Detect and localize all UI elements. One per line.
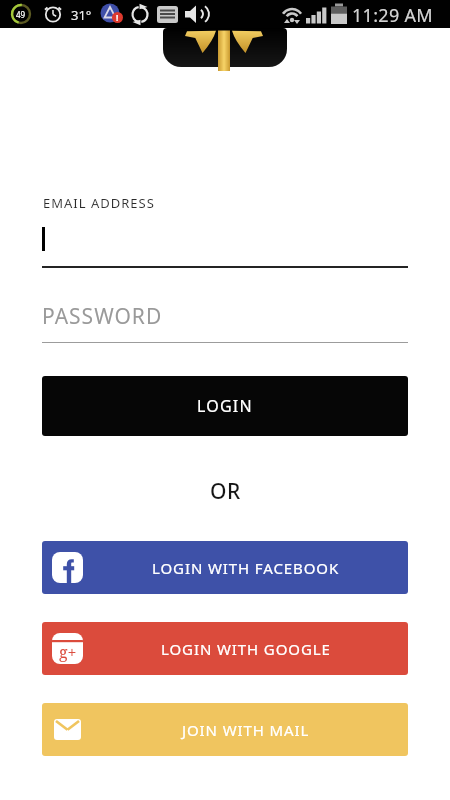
button[interactable]: LOGIN WITH FACEBOOK — [42, 541, 408, 594]
staticText: EMAIL ADDRESS — [43, 194, 155, 212]
staticText: OR — [210, 477, 241, 506]
staticText: LOGIN WITH GOOGLE — [161, 639, 331, 659]
button[interactable]: g+ — [42, 622, 408, 675]
staticText: PASSWORD — [42, 302, 163, 331]
button[interactable]: JOIN WITH MAIL — [42, 703, 408, 756]
staticText: 11:29 AM — [352, 3, 433, 28]
staticText: 31° — [71, 6, 92, 24]
staticText: g+ — [59, 641, 77, 663]
staticText: LOGIN — [197, 395, 253, 417]
staticText: LOGIN WITH FACEBOOK — [152, 558, 340, 578]
staticText: ! — [116, 12, 119, 23]
staticText: JOIN WITH MAIL — [182, 720, 310, 740]
button[interactable]: LOGIN — [42, 376, 408, 436]
staticText: 49 — [16, 9, 26, 20]
